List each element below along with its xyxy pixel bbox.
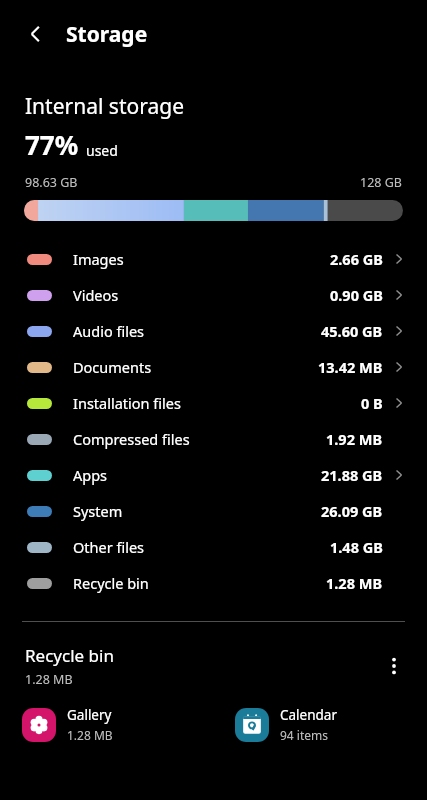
button[interactable]: Gallery [0,706,213,743]
staticText: 13.42 MB [318,357,383,377]
staticText: Recycle bin [73,573,149,593]
staticText: Images [73,249,124,269]
button[interactable]: Images [0,241,427,277]
staticText: used [86,141,118,160]
staticText: 98.63 GB [25,174,78,191]
staticText: 94 items [280,727,329,743]
staticText: Gallery [67,706,112,724]
staticText: 45.60 GB [321,321,383,341]
staticText: Calendar [280,706,337,724]
staticText: Recycle bin [25,644,114,667]
button[interactable]: Recycle bin [0,644,427,688]
staticText: Videos [73,285,119,305]
button[interactable]: Documents [0,349,427,385]
staticText: 128 GB [360,174,402,191]
staticText: 26.09 GB [321,501,383,521]
button[interactable]: Installation files [0,385,427,421]
staticText: 0 B [361,393,383,413]
button[interactable]: Calendar [213,706,427,743]
staticText: Storage [66,20,148,49]
staticText: 1.48 GB [330,537,383,557]
staticText: Compressed files [73,429,190,449]
button[interactable]: Apps [0,457,427,493]
staticText: Apps [73,465,108,485]
staticText: 77% [25,127,79,162]
button[interactable]: Other files [0,529,427,565]
staticText: 2.66 GB [330,249,383,269]
staticText: Audio files [73,321,145,341]
button[interactable]: Audio files [0,313,427,349]
staticText: 21.88 GB [321,465,383,485]
button[interactable]: Back [14,12,58,56]
staticText: 1.28 MB [67,727,113,743]
staticText: 0.90 GB [330,285,383,305]
button[interactable]: Compressed files [0,421,427,457]
button[interactable]: Videos [0,277,427,313]
button[interactable]: System [0,493,427,529]
staticText: System [73,501,123,521]
staticText: 1.28 MB [25,671,73,688]
staticText: 1.92 MB [326,429,383,449]
staticText: 1.28 MB [326,573,383,593]
button[interactable]: Recycle bin [0,565,427,601]
button[interactable]: More options [373,645,415,687]
staticText: Other files [73,537,145,557]
staticText: Installation files [73,393,181,413]
staticText: Documents [73,357,152,377]
staticText: Internal storage [25,92,184,121]
